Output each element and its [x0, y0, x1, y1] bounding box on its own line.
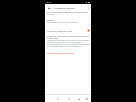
staticText: Réinitialiser le portefeuille Brave: [47, 52, 74, 54]
staticText: Personnalisez les réseaux du portefeuill…: [47, 21, 78, 23]
staticText: Afficher les notifications Web3: [47, 30, 87, 32]
staticText: Portefeuille Brave: [54, 6, 75, 9]
staticText: Appuyez sur cette option pour afficher l…: [47, 39, 90, 47]
button[interactable]: Back: [46, 5, 52, 11]
button[interactable]: Verrouiller automatiquement le portefeui…: [45, 11, 91, 15]
button[interactable]: Forward: [65, 95, 72, 102]
staticText: Réseaux: [47, 19, 54, 21]
button[interactable]: Afficher les notifications Web3: [45, 28, 91, 33]
staticText: 5 minutes: [47, 13, 55, 15]
staticText: 10:24: [46, 1, 51, 4]
button[interactable]: Back: [54, 95, 61, 102]
staticText: Verrouiller automatiquement le portefeui…: [47, 11, 89, 13]
button[interactable]: Réinitialiser le portefeuille Brave: [45, 52, 76, 54]
button[interactable]: Tabs: [83, 95, 90, 102]
button[interactable]: Réseaux: [45, 19, 91, 23]
button[interactable]: More options: [85, 5, 91, 11]
button[interactable]: Afficher les informations relatives aux …: [45, 35, 91, 47]
button[interactable]: Home: [75, 95, 82, 102]
staticText: Afficher les informations relatives aux …: [47, 35, 90, 39]
